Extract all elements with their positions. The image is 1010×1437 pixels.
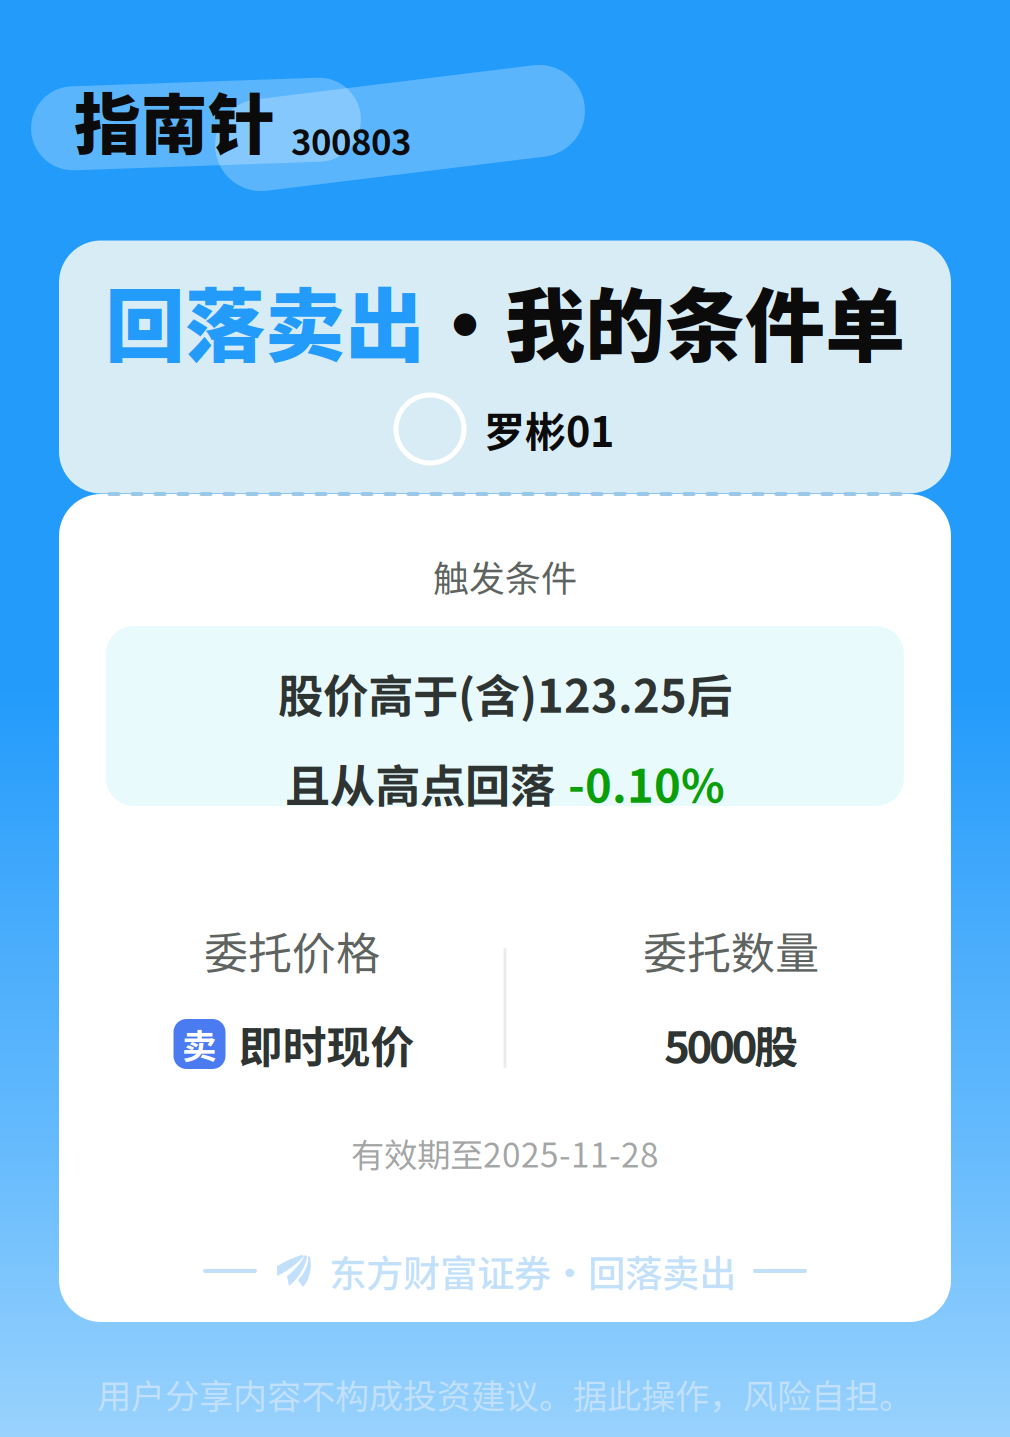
staticText: 5000股 [664,1012,798,1076]
staticText: 东方财富证券・回落卖出 [329,1244,736,1298]
staticText: 有效期至2025-11-28 [351,1129,659,1177]
button[interactable]: 罗彬01 [396,395,614,463]
staticText: 委托价格 [204,918,380,982]
staticText: 罗彬01 [484,399,614,459]
staticText: 用户分享内容不构成投资建议。据此操作，风险自担。 [97,1369,913,1419]
staticText: ・我的条件单 [425,262,905,378]
staticText: 且从高点回落 [285,750,555,816]
staticText: 委托数量 [643,918,819,982]
staticText: 回落卖出 [105,262,425,378]
staticText: 股价高于(含)123.25后 [278,660,732,726]
staticText: 触发条件 [433,550,577,602]
button[interactable]: 指南针 [74,72,434,168]
staticText: 300803 [291,115,411,165]
staticText: 即时现价 [238,1012,414,1076]
staticText: -0.10% [568,750,725,816]
staticText: 卖 [182,1019,217,1069]
staticText: 指南针 [74,72,275,168]
